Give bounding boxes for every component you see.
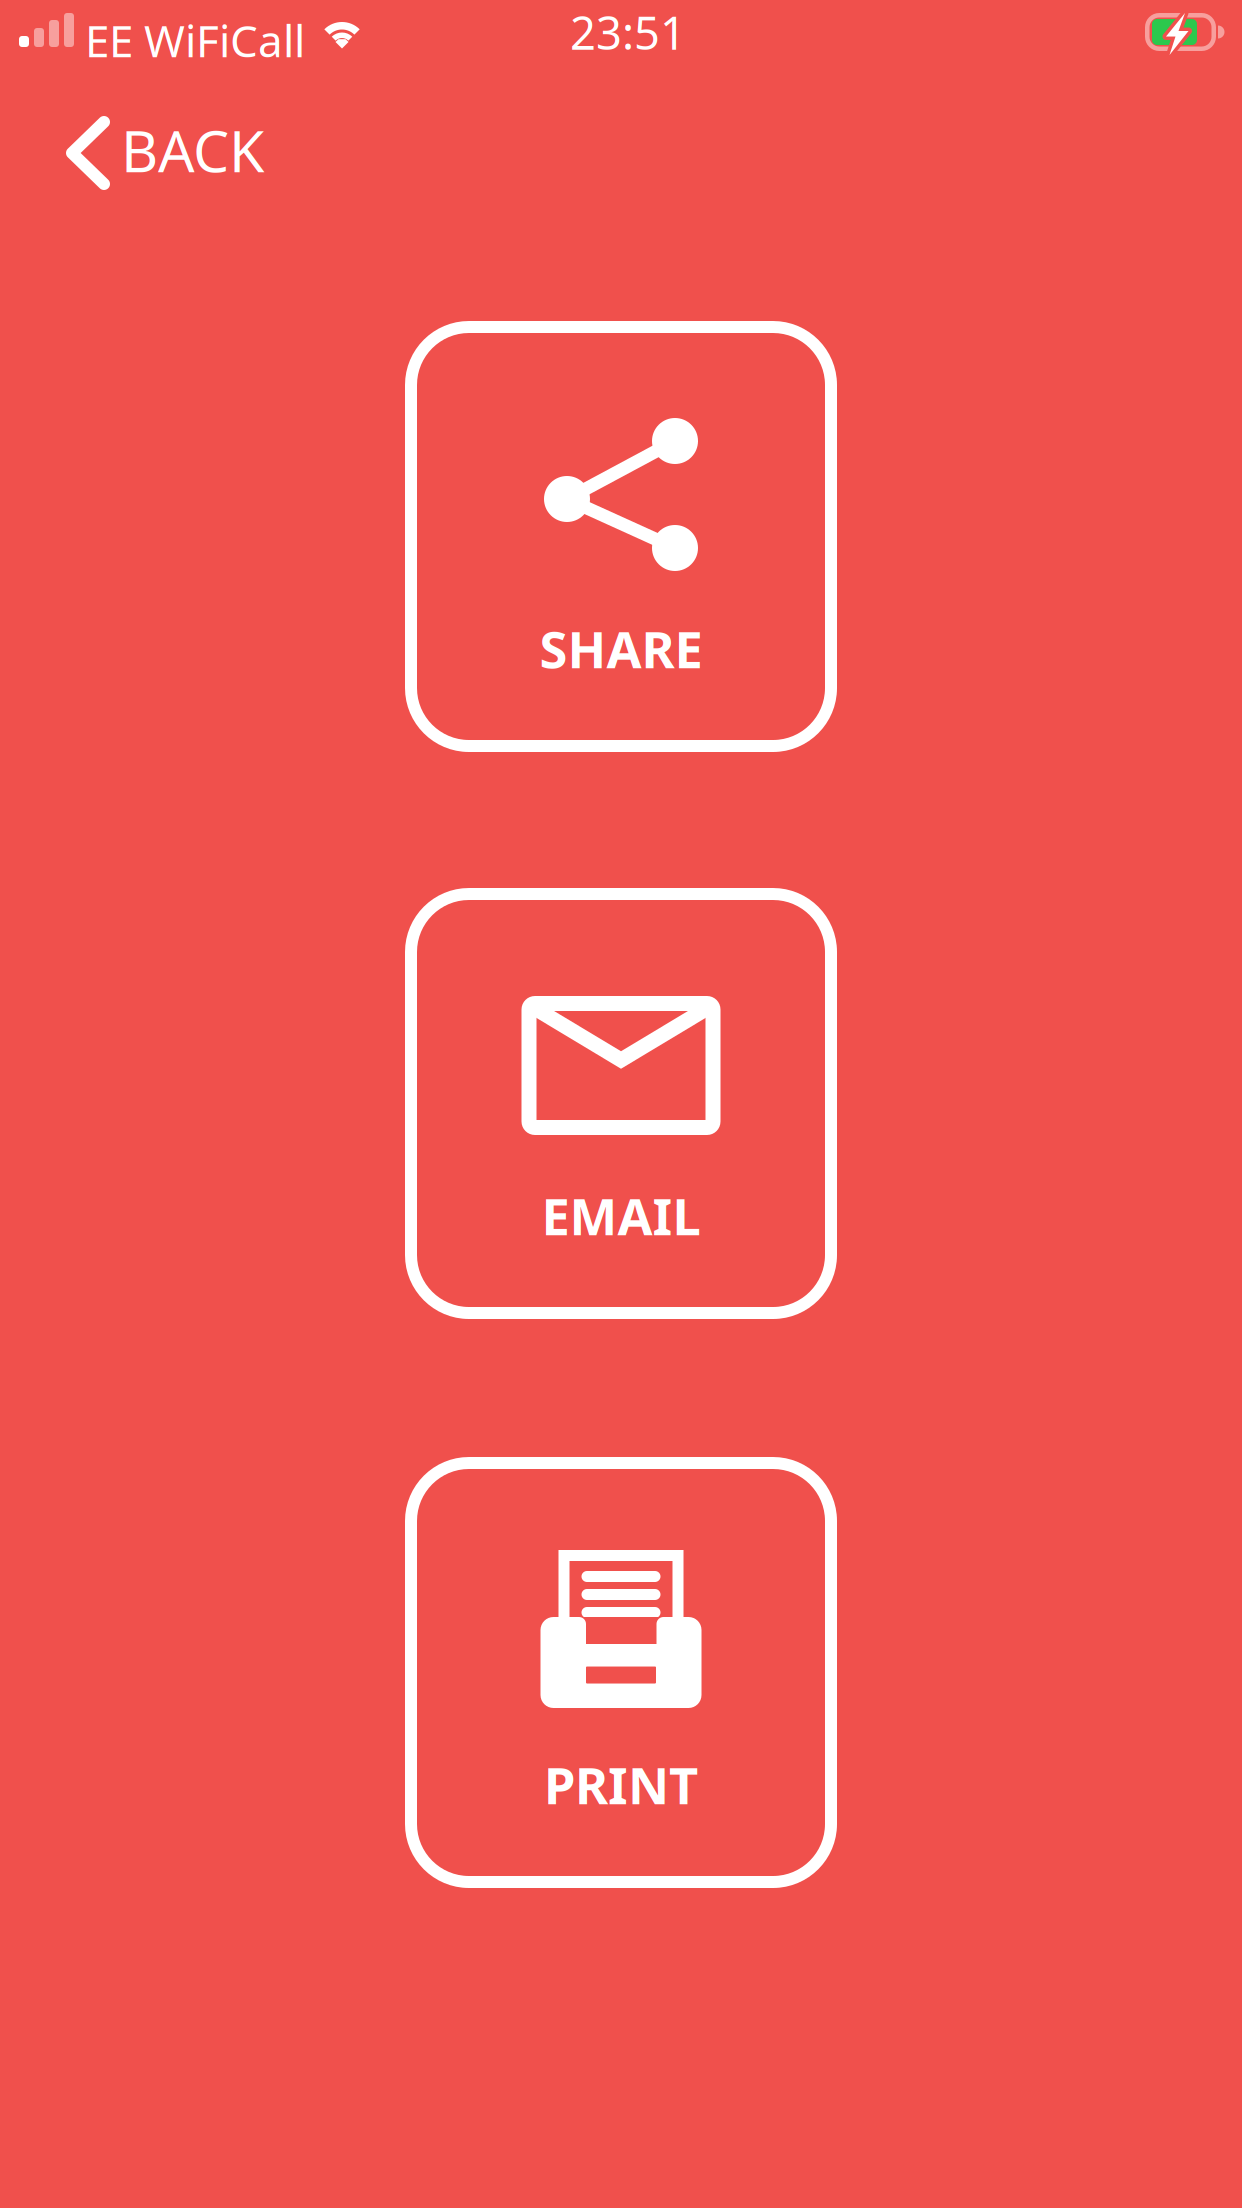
staticText: BACK — [121, 112, 264, 188]
button[interactable]: EMAIL — [405, 888, 837, 1319]
staticText: EE WiFiCall — [85, 11, 305, 69]
staticText: PRINT — [544, 1751, 698, 1818]
button[interactable]: SHARE — [405, 321, 837, 752]
button[interactable]: Back — [60, 96, 320, 210]
staticText: EMAIL — [541, 1182, 700, 1249]
staticText: SHARE — [539, 615, 702, 682]
staticText: 23:51 — [570, 2, 686, 62]
button[interactable]: PRINT — [405, 1457, 837, 1888]
